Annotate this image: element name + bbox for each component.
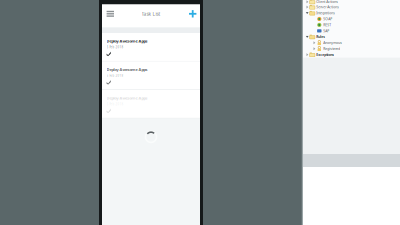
button[interactable]: SOAP	[303, 16, 400, 22]
staticText: Anonymous	[323, 40, 342, 45]
staticText: REST	[323, 23, 331, 27]
button[interactable]: Exceptions	[303, 52, 400, 58]
button[interactable]: Server Actions	[303, 4, 400, 10]
staticText: Rules	[316, 35, 325, 39]
button[interactable]: Client Actions	[303, 0, 400, 4]
staticText: Deploy Awesome Apps	[107, 95, 148, 101]
button[interactable]: SAP	[303, 28, 400, 34]
staticText: SOAP	[323, 17, 332, 21]
staticText: SAP	[323, 29, 329, 33]
staticText: Exceptions	[316, 52, 334, 57]
button[interactable]: Menu	[102, 8, 114, 20]
button[interactable]: Anonymous	[303, 40, 400, 46]
staticText: Server Actions	[316, 5, 339, 9]
staticText: Integrations	[316, 11, 335, 15]
button[interactable]: REST	[303, 22, 400, 28]
button[interactable]: Deploy Awesome Apps	[102, 33, 200, 61]
button[interactable]: Registered	[303, 46, 400, 52]
staticText: Registered	[323, 46, 340, 51]
button[interactable]: Rules	[303, 34, 400, 40]
staticText: Client Actions	[316, 0, 338, 4]
button[interactable]: Deploy Awesome Apps	[102, 90, 200, 118]
button[interactable]: Integrations	[303, 10, 400, 16]
button[interactable]: Deploy Awesome Apps	[102, 61, 200, 89]
staticText: Deploy Awesome Apps	[107, 67, 148, 72]
staticText: Task List	[141, 10, 160, 17]
staticText: 5 Feb 2018	[107, 74, 124, 77]
button[interactable]: Add task	[189, 8, 200, 20]
staticText: Deploy Awesome Apps	[107, 38, 148, 44]
staticText: 5 Feb 2018	[107, 45, 124, 49]
